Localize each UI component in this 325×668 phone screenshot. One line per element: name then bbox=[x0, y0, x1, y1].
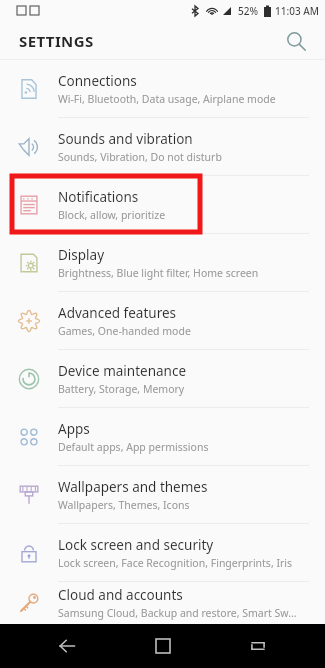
staticText: Samsung Cloud, Backup and restore, Smart… bbox=[58, 606, 297, 620]
staticText: Lock screen, Face Recognition, Fingerpri… bbox=[58, 556, 293, 570]
staticText: Display bbox=[58, 246, 105, 264]
button[interactable]: Search bbox=[279, 24, 313, 58]
staticText: Cloud and accounts bbox=[58, 586, 183, 604]
staticText: Notifications bbox=[58, 188, 139, 206]
button[interactable]: Connections bbox=[0, 60, 325, 117]
button[interactable]: Lock screen and security bbox=[0, 524, 325, 581]
button[interactable]: Cloud and accounts bbox=[0, 582, 325, 624]
staticText: Wi-Fi, Bluetooth, Data usage, Airplane m… bbox=[58, 92, 276, 106]
button[interactable]: Recents bbox=[230, 624, 286, 668]
staticText: Lock screen and security bbox=[58, 536, 214, 554]
button[interactable]: Sounds and vibration bbox=[0, 118, 325, 175]
staticText: SETTINGS bbox=[19, 31, 94, 51]
staticText: Advanced features bbox=[58, 304, 177, 322]
staticText: Apps bbox=[58, 420, 90, 438]
staticText: Battery, Storage, Memory bbox=[58, 382, 185, 396]
button[interactable]: Back bbox=[39, 624, 95, 668]
staticText: Block, allow, prioritize bbox=[58, 208, 166, 222]
staticText: Games, One-handed mode bbox=[58, 324, 191, 338]
staticText: Connections bbox=[58, 72, 137, 90]
staticText: Sounds and vibration bbox=[58, 130, 193, 148]
staticText: Device maintenance bbox=[58, 362, 187, 380]
staticText: Wallpapers, Themes, Icons bbox=[58, 498, 190, 512]
staticText: 52% bbox=[238, 4, 258, 18]
button[interactable]: Notifications bbox=[0, 176, 325, 233]
staticText: Sounds, Vibration, Do not disturb bbox=[58, 150, 222, 164]
button[interactable]: Display bbox=[0, 234, 325, 291]
staticText: Brightness, Blue light filter, Home scre… bbox=[58, 266, 259, 280]
button[interactable]: Apps bbox=[0, 408, 325, 465]
button[interactable]: Wallpapers and themes bbox=[0, 466, 325, 523]
staticText: 11:03 AM bbox=[275, 4, 319, 18]
staticText: Default apps, App permissions bbox=[58, 440, 209, 454]
button[interactable]: Home bbox=[135, 624, 191, 668]
button[interactable]: Device maintenance bbox=[0, 350, 325, 407]
staticText: Wallpapers and themes bbox=[58, 478, 208, 496]
button[interactable]: Advanced features bbox=[0, 292, 325, 349]
